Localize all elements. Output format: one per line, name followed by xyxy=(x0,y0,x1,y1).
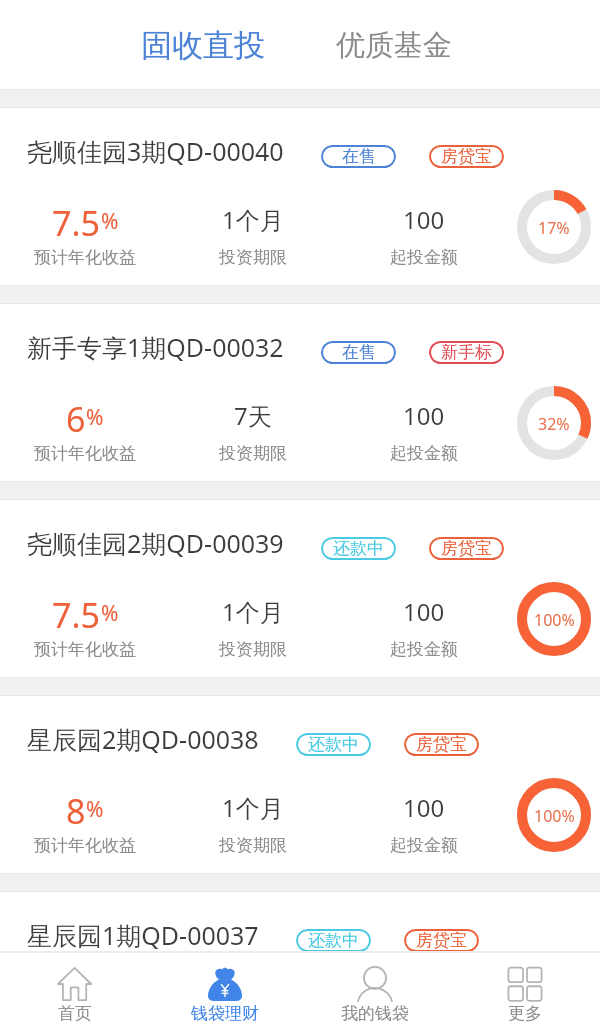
staticText: 6 xyxy=(66,396,86,442)
staticText: 固收直投 xyxy=(141,26,265,65)
button[interactable]: 新手专享1期QD-00032 xyxy=(0,304,600,481)
staticText: 7.5 xyxy=(52,984,101,1030)
button[interactable]: 房贷宝 xyxy=(429,537,504,560)
staticText: 首页 xyxy=(58,1003,92,1024)
button[interactable]: 还款中 xyxy=(296,929,371,952)
staticText: 投资期限 xyxy=(219,835,287,856)
staticText: 尧顺佳园2期QD-00039 xyxy=(27,526,284,560)
button[interactable]: 还款中 xyxy=(321,537,396,560)
staticText: 起投金额 xyxy=(390,443,458,464)
button[interactable]: 房贷宝 xyxy=(404,733,479,756)
staticText: 钱袋理财 xyxy=(191,1003,259,1024)
staticText: 100 xyxy=(403,791,445,824)
staticText: 8 xyxy=(66,788,86,834)
button[interactable]: 固收直投 xyxy=(108,0,298,89)
button[interactable]: 房贷宝 xyxy=(429,145,504,168)
staticText: 预计年化收益 xyxy=(34,247,136,268)
button[interactable]: 房贷宝 xyxy=(404,929,479,952)
staticText: 起投金额 xyxy=(390,835,458,856)
staticText: 投资期限 xyxy=(219,639,287,660)
staticText: 尧顺佳园2期QD-00039 xyxy=(27,526,284,560)
staticText: 7.5 xyxy=(52,200,101,246)
staticText: 32% xyxy=(538,413,570,435)
staticText: 星辰园2期QD-00038 xyxy=(27,722,259,756)
staticText: 还款中 xyxy=(333,538,384,559)
staticText: 星辰园1期QD-00037 xyxy=(27,918,259,952)
staticText: 尧顺佳园3期QD-00040 xyxy=(27,134,284,168)
button[interactable]: Wallet finance xyxy=(150,953,300,1033)
button[interactable]: More xyxy=(450,953,600,1033)
staticText: 房贷宝 xyxy=(416,930,467,951)
staticText: 星辰园2期QD-00038 xyxy=(27,722,259,756)
staticText: 还款中 xyxy=(308,930,359,951)
staticText: 1个月 xyxy=(222,791,284,824)
staticText: 优质基金 xyxy=(336,27,452,64)
staticText: 投资期限 xyxy=(219,247,287,268)
staticText: 1个月 xyxy=(222,987,284,1020)
staticText: % xyxy=(101,207,119,236)
staticText: 1个月 xyxy=(222,203,284,236)
staticText: 还款中 xyxy=(308,734,359,755)
staticText: 100 xyxy=(403,203,445,236)
button[interactable]: Home xyxy=(0,953,150,1033)
staticText: 100% xyxy=(534,805,575,827)
staticText: 房贷宝 xyxy=(441,146,492,167)
button[interactable]: 尧顺佳园3期QD-00040 xyxy=(0,108,600,285)
staticText: 起投金额 xyxy=(390,247,458,268)
staticText: 新手专享1期QD-00032 xyxy=(27,330,284,364)
button[interactable]: 尧顺佳园2期QD-00039 xyxy=(0,500,600,677)
staticText: 新手专享1期QD-00032 xyxy=(27,330,284,364)
button[interactable]: 在售 xyxy=(321,145,396,168)
staticText: % xyxy=(86,403,104,432)
button[interactable]: 新手标 xyxy=(429,341,504,364)
staticText: 房贷宝 xyxy=(441,538,492,559)
button[interactable]: 星辰园2期QD-00038 xyxy=(0,696,600,873)
staticText: % xyxy=(86,795,104,824)
staticText: 我的钱袋 xyxy=(341,1003,409,1024)
staticText: 预计年化收益 xyxy=(34,835,136,856)
staticText: 7.5 xyxy=(52,592,101,638)
staticText: 房贷宝 xyxy=(416,734,467,755)
staticText: 100% xyxy=(534,609,575,631)
staticText: 100 xyxy=(403,399,445,432)
staticText: 起投金额 xyxy=(390,639,458,660)
staticText: 在售 xyxy=(342,342,376,363)
staticText: 投资期限 xyxy=(219,443,287,464)
staticText: 17% xyxy=(538,217,570,239)
staticText: 1个月 xyxy=(222,595,284,628)
staticText: 尧顺佳园3期QD-00040 xyxy=(27,134,284,168)
staticText: 星辰园1期QD-00037 xyxy=(27,918,259,952)
button[interactable]: 星辰园1期QD-00037 xyxy=(0,892,600,951)
staticText: 预计年化收益 xyxy=(34,443,136,464)
staticText: % xyxy=(101,599,119,628)
staticText: 7天 xyxy=(234,399,272,432)
staticText: 100 xyxy=(403,987,445,1020)
staticText: 100 xyxy=(403,595,445,628)
staticText: 在售 xyxy=(342,146,376,167)
staticText: 预计年化收益 xyxy=(34,639,136,660)
staticText: 新手标 xyxy=(441,342,492,363)
staticText: 更多 xyxy=(508,1003,542,1024)
button[interactable]: 还款中 xyxy=(296,733,371,756)
button[interactable]: 在售 xyxy=(321,341,396,364)
staticText: 100% xyxy=(534,994,575,1016)
button[interactable]: 优质基金 xyxy=(299,0,489,89)
button[interactable]: My wallet xyxy=(300,953,450,1033)
